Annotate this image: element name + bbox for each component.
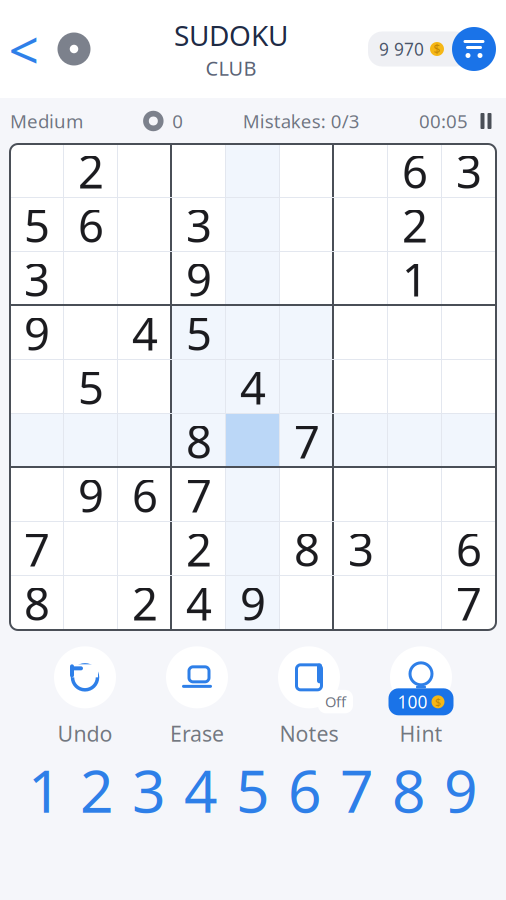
button[interactable]: 9 bbox=[226, 576, 280, 630]
button[interactable] bbox=[10, 414, 64, 468]
staticText: 6 bbox=[78, 195, 104, 255]
staticText: 7 bbox=[186, 465, 212, 525]
button[interactable] bbox=[442, 252, 496, 306]
button[interactable]: 9 bbox=[10, 306, 64, 360]
button[interactable] bbox=[334, 576, 388, 630]
button[interactable]: 3 bbox=[172, 198, 226, 252]
button[interactable] bbox=[442, 468, 496, 522]
button[interactable] bbox=[10, 360, 64, 414]
button[interactable] bbox=[64, 252, 118, 306]
button[interactable]: 6 bbox=[279, 753, 331, 827]
button[interactable] bbox=[226, 144, 280, 198]
button[interactable]: 4 bbox=[226, 360, 280, 414]
button[interactable] bbox=[442, 306, 496, 360]
button[interactable]: 6 bbox=[442, 522, 496, 576]
button[interactable] bbox=[442, 414, 496, 468]
button[interactable] bbox=[388, 576, 442, 630]
button[interactable] bbox=[280, 576, 334, 630]
button[interactable]: 7 bbox=[172, 468, 226, 522]
button[interactable]: 6 bbox=[64, 198, 118, 252]
button[interactable] bbox=[334, 414, 388, 468]
button[interactable] bbox=[118, 360, 172, 414]
button[interactable]: 3 bbox=[123, 753, 175, 827]
button[interactable]: Pause bbox=[476, 109, 496, 133]
button[interactable]: 2 bbox=[118, 576, 172, 630]
button[interactable]: 8 bbox=[172, 414, 226, 468]
button[interactable] bbox=[334, 360, 388, 414]
button[interactable] bbox=[388, 360, 442, 414]
button[interactable] bbox=[280, 360, 334, 414]
button[interactable] bbox=[334, 306, 388, 360]
button[interactable]: 8 bbox=[383, 753, 435, 827]
button[interactable] bbox=[388, 306, 442, 360]
button[interactable]: Settings bbox=[48, 19, 100, 79]
button[interactable] bbox=[280, 144, 334, 198]
button[interactable] bbox=[118, 198, 172, 252]
button[interactable] bbox=[64, 414, 118, 468]
button[interactable]: 7 bbox=[10, 522, 64, 576]
button[interactable]: 4 bbox=[118, 306, 172, 360]
button[interactable] bbox=[226, 252, 280, 306]
button[interactable] bbox=[10, 144, 64, 198]
button[interactable] bbox=[10, 468, 64, 522]
button[interactable] bbox=[118, 144, 172, 198]
button[interactable] bbox=[334, 144, 388, 198]
button[interactable]: 8 bbox=[10, 576, 64, 630]
button[interactable]: 7 bbox=[280, 414, 334, 468]
button[interactable]: 9 bbox=[435, 753, 487, 827]
button[interactable]: 6 bbox=[388, 144, 442, 198]
button[interactable]: 3 bbox=[10, 252, 64, 306]
button[interactable] bbox=[388, 522, 442, 576]
button[interactable] bbox=[334, 198, 388, 252]
button[interactable]: 2 bbox=[71, 753, 123, 827]
button[interactable]: 1 bbox=[19, 753, 71, 827]
button[interactable] bbox=[172, 144, 226, 198]
button[interactable]: 2 bbox=[172, 522, 226, 576]
button[interactable]: 3 bbox=[334, 522, 388, 576]
button[interactable]: 5 bbox=[172, 306, 226, 360]
button[interactable]: 7 bbox=[442, 576, 496, 630]
button[interactable]: Undo bbox=[29, 644, 141, 748]
button[interactable] bbox=[442, 360, 496, 414]
button[interactable]: 4 bbox=[172, 576, 226, 630]
button[interactable] bbox=[64, 306, 118, 360]
button[interactable] bbox=[388, 414, 442, 468]
button[interactable]: 6 bbox=[118, 468, 172, 522]
button[interactable] bbox=[64, 576, 118, 630]
button[interactable] bbox=[280, 468, 334, 522]
button[interactable]: Erase bbox=[141, 644, 253, 748]
button[interactable]: 7 bbox=[331, 753, 383, 827]
button[interactable]: 5 bbox=[64, 360, 118, 414]
button[interactable]: Shop bbox=[452, 27, 496, 71]
button[interactable]: Back bbox=[0, 19, 48, 79]
button[interactable] bbox=[118, 522, 172, 576]
button[interactable]: 4 bbox=[175, 753, 227, 827]
button[interactable] bbox=[442, 198, 496, 252]
button[interactable]: 8 bbox=[280, 522, 334, 576]
button[interactable]: 5 bbox=[10, 198, 64, 252]
button[interactable]: Off bbox=[253, 644, 365, 748]
button[interactable]: 100 bbox=[365, 644, 477, 748]
button[interactable] bbox=[280, 198, 334, 252]
button[interactable]: 2 bbox=[388, 198, 442, 252]
button[interactable]: 9 bbox=[64, 468, 118, 522]
button[interactable]: 1 bbox=[388, 252, 442, 306]
button[interactable] bbox=[334, 252, 388, 306]
button[interactable] bbox=[388, 468, 442, 522]
button[interactable]: 2 bbox=[64, 144, 118, 198]
button[interactable] bbox=[118, 414, 172, 468]
button[interactable] bbox=[334, 468, 388, 522]
button[interactable] bbox=[64, 522, 118, 576]
button[interactable]: 9 bbox=[172, 252, 226, 306]
button[interactable]: 5 bbox=[227, 753, 279, 827]
button[interactable] bbox=[280, 252, 334, 306]
button[interactable] bbox=[280, 306, 334, 360]
button[interactable] bbox=[226, 414, 280, 468]
button[interactable] bbox=[118, 252, 172, 306]
button[interactable]: 3 bbox=[442, 144, 496, 198]
